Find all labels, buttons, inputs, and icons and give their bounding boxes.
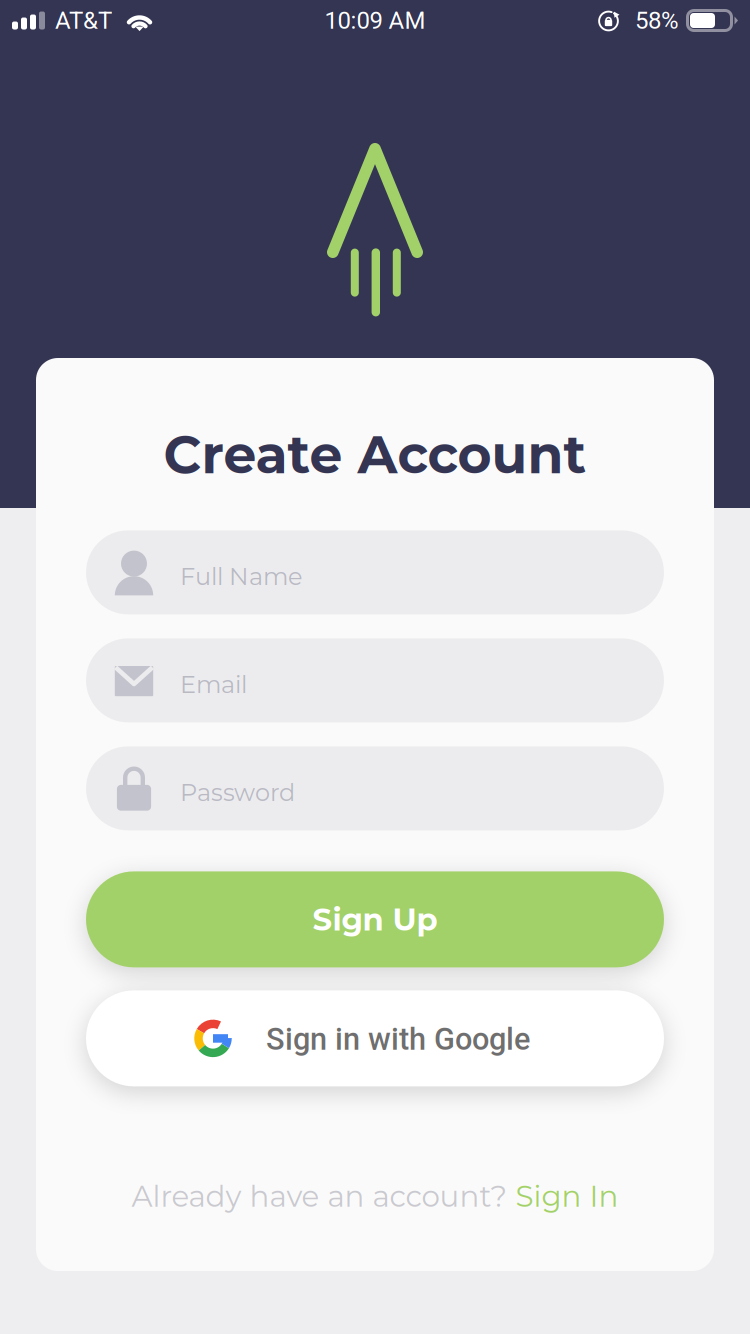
staticText: Sign Up [312,901,437,938]
staticText: Full Name [180,562,302,591]
staticText: Already have an account? [131,1178,515,1214]
button[interactable]: Sign in with Google [86,990,664,1086]
staticText: 58% [635,6,679,34]
button[interactable]: Password [86,746,664,830]
staticText: 10:09 AM [324,6,425,34]
staticText: AT&T [55,6,112,34]
staticText: Sign in with Google [266,1021,530,1057]
staticText: Create Account [163,423,586,486]
button[interactable]: Email [86,638,664,722]
button[interactable]: Already have an account? [131,1178,618,1214]
button[interactable]: Full Name [86,530,664,614]
staticText: Password [180,778,295,807]
staticText: Email [180,670,247,699]
button[interactable]: Sign Up [86,871,664,967]
staticText: Sign In [515,1178,618,1214]
